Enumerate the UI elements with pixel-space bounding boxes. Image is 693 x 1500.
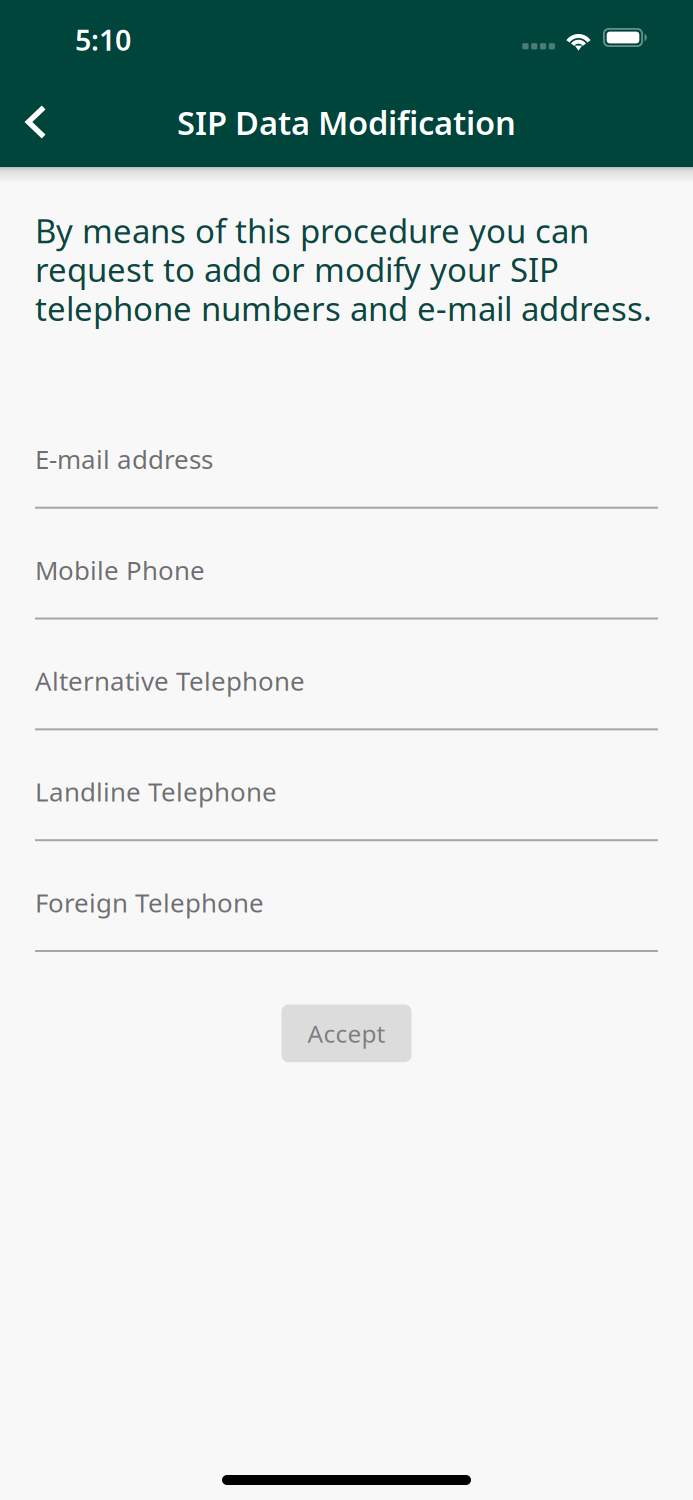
staticText: E-mail address bbox=[35, 441, 213, 477]
staticText: 5:10 bbox=[75, 20, 131, 59]
button[interactable]: Back bbox=[0, 88, 72, 156]
button[interactable]: Mobile Phone bbox=[35, 549, 658, 660]
staticText: Foreign Telephone bbox=[35, 885, 264, 920]
button[interactable]: Alternative Telephone bbox=[35, 660, 658, 771]
button[interactable]: Landline Telephone bbox=[35, 771, 658, 882]
staticText: SIP Data Modification bbox=[177, 100, 516, 144]
staticText: By means of this procedure you can reque… bbox=[35, 208, 652, 331]
button[interactable]: E-mail address bbox=[35, 439, 658, 549]
button[interactable]: Foreign Telephone bbox=[35, 882, 658, 993]
staticText: Landline Telephone bbox=[35, 774, 277, 809]
staticText: Mobile Phone bbox=[35, 552, 205, 587]
staticText: Accept bbox=[307, 1017, 385, 1050]
button[interactable]: Accept bbox=[281, 1004, 411, 1062]
staticText: Alternative Telephone bbox=[35, 663, 305, 698]
